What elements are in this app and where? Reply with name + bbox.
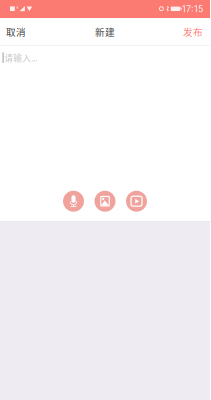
button[interactable]: Record voice [63,191,84,212]
staticText: 17:15 [182,4,203,14]
button[interactable]: 发布 [175,18,210,45]
staticText: 取消 [6,24,26,38]
staticText: 发布 [183,24,203,38]
button[interactable]: Add video [126,191,147,212]
staticText: 请输入... [4,51,37,64]
staticText: 新建 [95,24,115,38]
button[interactable]: Add photo [94,191,115,212]
button[interactable]: 取消 [0,18,34,45]
